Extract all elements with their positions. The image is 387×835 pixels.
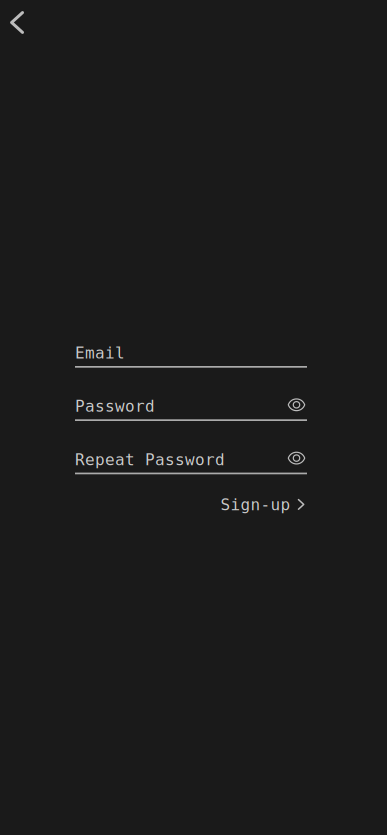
button[interactable]: Password bbox=[75, 396, 307, 421]
button[interactable]: Repeat Password bbox=[75, 450, 307, 474]
button[interactable]: Show Repeat Password bbox=[286, 450, 307, 470]
button[interactable]: Show Password bbox=[286, 396, 307, 416]
staticText: Password bbox=[75, 397, 155, 416]
staticText: Email bbox=[75, 344, 125, 362]
staticText: Sign-up bbox=[220, 495, 290, 514]
staticText: Repeat Password bbox=[75, 450, 225, 469]
button[interactable]: Back bbox=[0, 0, 24, 34]
button[interactable]: Email bbox=[75, 343, 307, 368]
button[interactable]: Sign-up bbox=[220, 495, 305, 514]
